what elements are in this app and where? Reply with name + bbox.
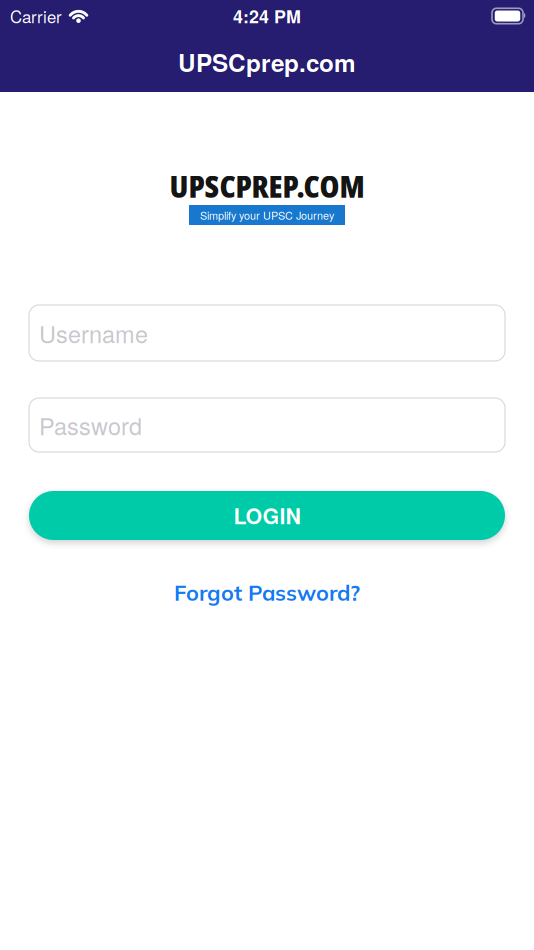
staticText: Password [39, 408, 142, 442]
staticText: Forgot Password? [174, 579, 360, 606]
staticText: Username [39, 316, 148, 350]
staticText: Simplify your UPSC Journey [200, 207, 334, 223]
button[interactable]: Password [29, 398, 505, 452]
button[interactable]: LOGIN [29, 491, 505, 540]
staticText: UPSCprep.com [178, 45, 356, 79]
staticText: UPSCPREP.COM [169, 166, 364, 206]
staticText: LOGIN [233, 500, 300, 531]
button[interactable]: Username [29, 305, 505, 361]
staticText: 4:24 PM [233, 3, 301, 29]
button[interactable]: Forgot Password? [174, 579, 360, 606]
staticText: Carrier [10, 4, 62, 28]
